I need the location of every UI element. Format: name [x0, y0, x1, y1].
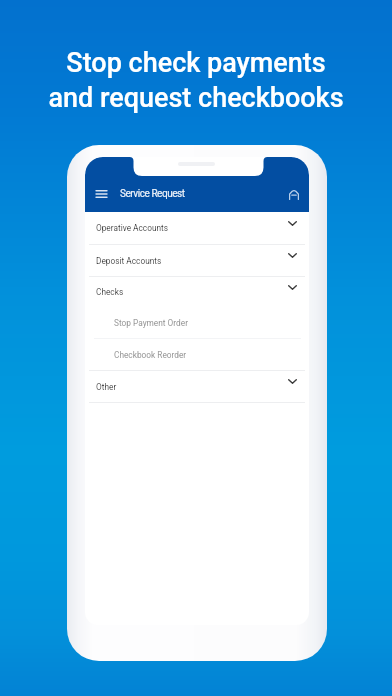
button[interactable]: Stop Payment Order	[85, 307, 309, 338]
button[interactable]: Checkbook Reorder	[85, 339, 309, 370]
staticText: Operative Accounts	[96, 223, 169, 233]
staticText: Stop check payments	[66, 47, 326, 79]
button[interactable]: Deposit Accounts	[85, 245, 309, 276]
button[interactable]: Open navigation menu	[89, 182, 113, 206]
staticText: Deposit Accounts	[96, 256, 162, 266]
staticText: Stop Payment Order	[114, 318, 188, 328]
button[interactable]: Operative Accounts	[85, 212, 309, 244]
button[interactable]: Checks	[85, 277, 309, 307]
staticText: Service Request	[120, 188, 185, 200]
staticText: and request checkbooks	[48, 82, 344, 114]
staticText: Other	[96, 382, 117, 392]
staticText: Checkbook Reorder	[114, 350, 187, 360]
button[interactable]: Other	[85, 371, 309, 402]
staticText: Checks	[96, 287, 124, 297]
button[interactable]: Home	[283, 183, 305, 205]
